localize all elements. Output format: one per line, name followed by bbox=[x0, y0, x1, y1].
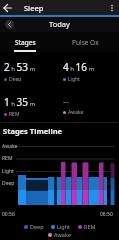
staticText: 1 h 35 m bbox=[4, 95, 36, 109]
staticText: Awake bbox=[2, 143, 18, 150]
staticText: 06:50 bbox=[100, 211, 113, 218]
staticText: 2 h 53 m bbox=[4, 60, 36, 74]
staticText: Pulse Ox bbox=[72, 38, 99, 47]
button[interactable]: 2 h 53 m bbox=[4, 60, 36, 83]
staticText: REM bbox=[9, 111, 20, 118]
button[interactable] bbox=[0, 32, 59, 52]
staticText: 00:56 bbox=[2, 211, 15, 218]
button[interactable]: Today bbox=[49, 19, 70, 29]
staticText: Awake bbox=[68, 109, 84, 116]
button[interactable] bbox=[108, 4, 116, 12]
staticText: Awake bbox=[54, 231, 71, 238]
staticText: REM bbox=[2, 155, 13, 162]
staticText: Light bbox=[2, 168, 14, 175]
staticText: -- bbox=[63, 95, 69, 107]
button[interactable] bbox=[59, 32, 119, 52]
staticText: Light bbox=[68, 76, 80, 83]
button[interactable]: 4 h 16 m bbox=[63, 60, 95, 83]
staticText: Light bbox=[57, 223, 71, 230]
staticText: 4 h 16 m bbox=[63, 60, 95, 74]
staticText: Stages Timeline bbox=[3, 126, 63, 136]
staticText: Sleep bbox=[24, 3, 44, 13]
button[interactable]: -- bbox=[63, 95, 84, 116]
button[interactable] bbox=[3, 3, 13, 13]
staticText: Deep bbox=[30, 223, 44, 230]
staticText: Deep bbox=[9, 76, 22, 83]
staticText: Stages bbox=[15, 38, 36, 47]
staticText: REM bbox=[84, 223, 96, 230]
button[interactable]: 1 h 35 m bbox=[4, 95, 36, 118]
staticText: Deep bbox=[2, 180, 15, 187]
button[interactable] bbox=[5, 20, 14, 29]
